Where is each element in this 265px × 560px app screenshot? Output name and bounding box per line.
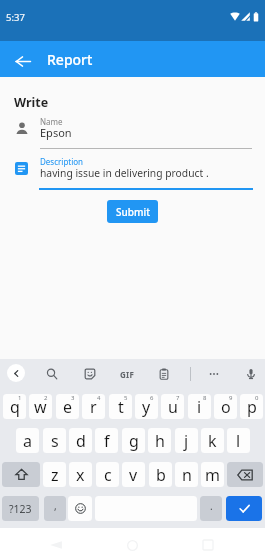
staticText: 0 bbox=[255, 394, 259, 402]
staticText: Report bbox=[47, 50, 93, 69]
staticText: GIF bbox=[120, 369, 135, 380]
staticText: b bbox=[156, 464, 166, 486]
button[interactable]: g bbox=[122, 428, 145, 453]
staticText: c bbox=[104, 464, 112, 486]
staticText: l bbox=[236, 430, 241, 452]
button[interactable]: GIF bbox=[117, 368, 137, 381]
staticText: n bbox=[182, 464, 192, 486]
button[interactable]: d bbox=[69, 428, 92, 453]
button[interactable]: . bbox=[200, 496, 222, 521]
staticText: t bbox=[118, 396, 124, 418]
staticText: 2 bbox=[44, 394, 48, 402]
staticText: 1 bbox=[18, 394, 22, 402]
button[interactable]: ?123 bbox=[2, 496, 39, 521]
button[interactable]: Previous bbox=[7, 364, 25, 382]
staticText: Name bbox=[40, 116, 63, 127]
button[interactable]: k bbox=[201, 428, 224, 453]
staticText: o bbox=[221, 396, 231, 418]
staticText: u bbox=[168, 396, 178, 418]
staticText: Write bbox=[14, 94, 49, 111]
button[interactable]: a bbox=[16, 428, 39, 453]
staticText: i bbox=[197, 396, 202, 418]
staticText: , bbox=[54, 499, 57, 513]
button[interactable]: f bbox=[95, 428, 118, 453]
staticText: w bbox=[34, 396, 47, 418]
button[interactable]: q bbox=[3, 394, 26, 419]
button[interactable]: h bbox=[148, 428, 171, 453]
button[interactable]: Voice input bbox=[242, 365, 260, 383]
staticText: Description bbox=[40, 156, 84, 167]
button[interactable]: u bbox=[161, 394, 184, 419]
staticText: h bbox=[155, 430, 165, 452]
button[interactable]: Clipboard bbox=[155, 365, 173, 383]
button[interactable]: v bbox=[122, 462, 145, 487]
button[interactable]: e bbox=[56, 394, 79, 419]
staticText: Epson bbox=[40, 125, 72, 140]
staticText: ?123 bbox=[9, 502, 32, 516]
staticText: r bbox=[90, 396, 97, 418]
staticText: d bbox=[76, 430, 86, 452]
button[interactable]: Back bbox=[5, 43, 41, 79]
staticText: z bbox=[51, 464, 59, 486]
button[interactable]: Submit bbox=[107, 200, 158, 223]
staticText: q bbox=[10, 396, 20, 418]
button[interactable]: l bbox=[227, 428, 250, 453]
staticText: 5 bbox=[124, 394, 128, 402]
staticText: g bbox=[129, 430, 139, 452]
staticText: having issue in delivering product . bbox=[40, 166, 209, 180]
button[interactable]: c bbox=[96, 462, 119, 487]
staticText: 6 bbox=[150, 394, 154, 402]
staticText: 4 bbox=[97, 394, 101, 402]
staticText: Submit bbox=[116, 205, 150, 219]
button[interactable]: z bbox=[43, 462, 66, 487]
button[interactable]: m bbox=[201, 462, 224, 487]
staticText: 8 bbox=[203, 394, 207, 402]
staticText: x bbox=[76, 464, 85, 486]
staticText: 7 bbox=[176, 394, 180, 402]
staticText: 5:37 bbox=[6, 11, 25, 24]
button[interactable]: Emoji bbox=[68, 496, 92, 521]
staticText: p bbox=[247, 396, 257, 418]
staticText: e bbox=[63, 396, 73, 418]
staticText: k bbox=[208, 430, 217, 452]
button[interactable]: y bbox=[135, 394, 158, 419]
button[interactable]: w bbox=[29, 394, 52, 419]
button[interactable]: , bbox=[44, 496, 66, 521]
button[interactable]: Shift bbox=[2, 462, 40, 487]
button[interactable]: n bbox=[175, 462, 198, 487]
button[interactable]: s bbox=[43, 428, 66, 453]
button[interactable]: Search bbox=[43, 365, 61, 383]
button[interactable]: Stickers bbox=[81, 365, 99, 383]
staticText: m bbox=[205, 464, 220, 486]
staticText: v bbox=[129, 464, 138, 486]
staticText: 3 bbox=[71, 394, 75, 402]
button[interactable]: p bbox=[240, 394, 263, 419]
staticText: j bbox=[184, 430, 189, 452]
button[interactable]: b bbox=[149, 462, 172, 487]
staticText: y bbox=[142, 396, 151, 418]
staticText: f bbox=[104, 430, 110, 452]
staticText: . bbox=[210, 499, 213, 513]
button[interactable]: r bbox=[82, 394, 105, 419]
button[interactable]: j bbox=[175, 428, 198, 453]
button[interactable]: More options bbox=[205, 365, 223, 383]
button[interactable]: x bbox=[69, 462, 92, 487]
button[interactable]: o bbox=[214, 394, 237, 419]
staticText: s bbox=[51, 430, 59, 452]
button[interactable]: Enter bbox=[226, 496, 262, 521]
staticText: a bbox=[23, 430, 32, 452]
button[interactable]: t bbox=[109, 394, 132, 419]
button[interactable]: i bbox=[188, 394, 211, 419]
button[interactable]: Backspace bbox=[227, 462, 263, 487]
staticText: 9 bbox=[229, 394, 233, 402]
